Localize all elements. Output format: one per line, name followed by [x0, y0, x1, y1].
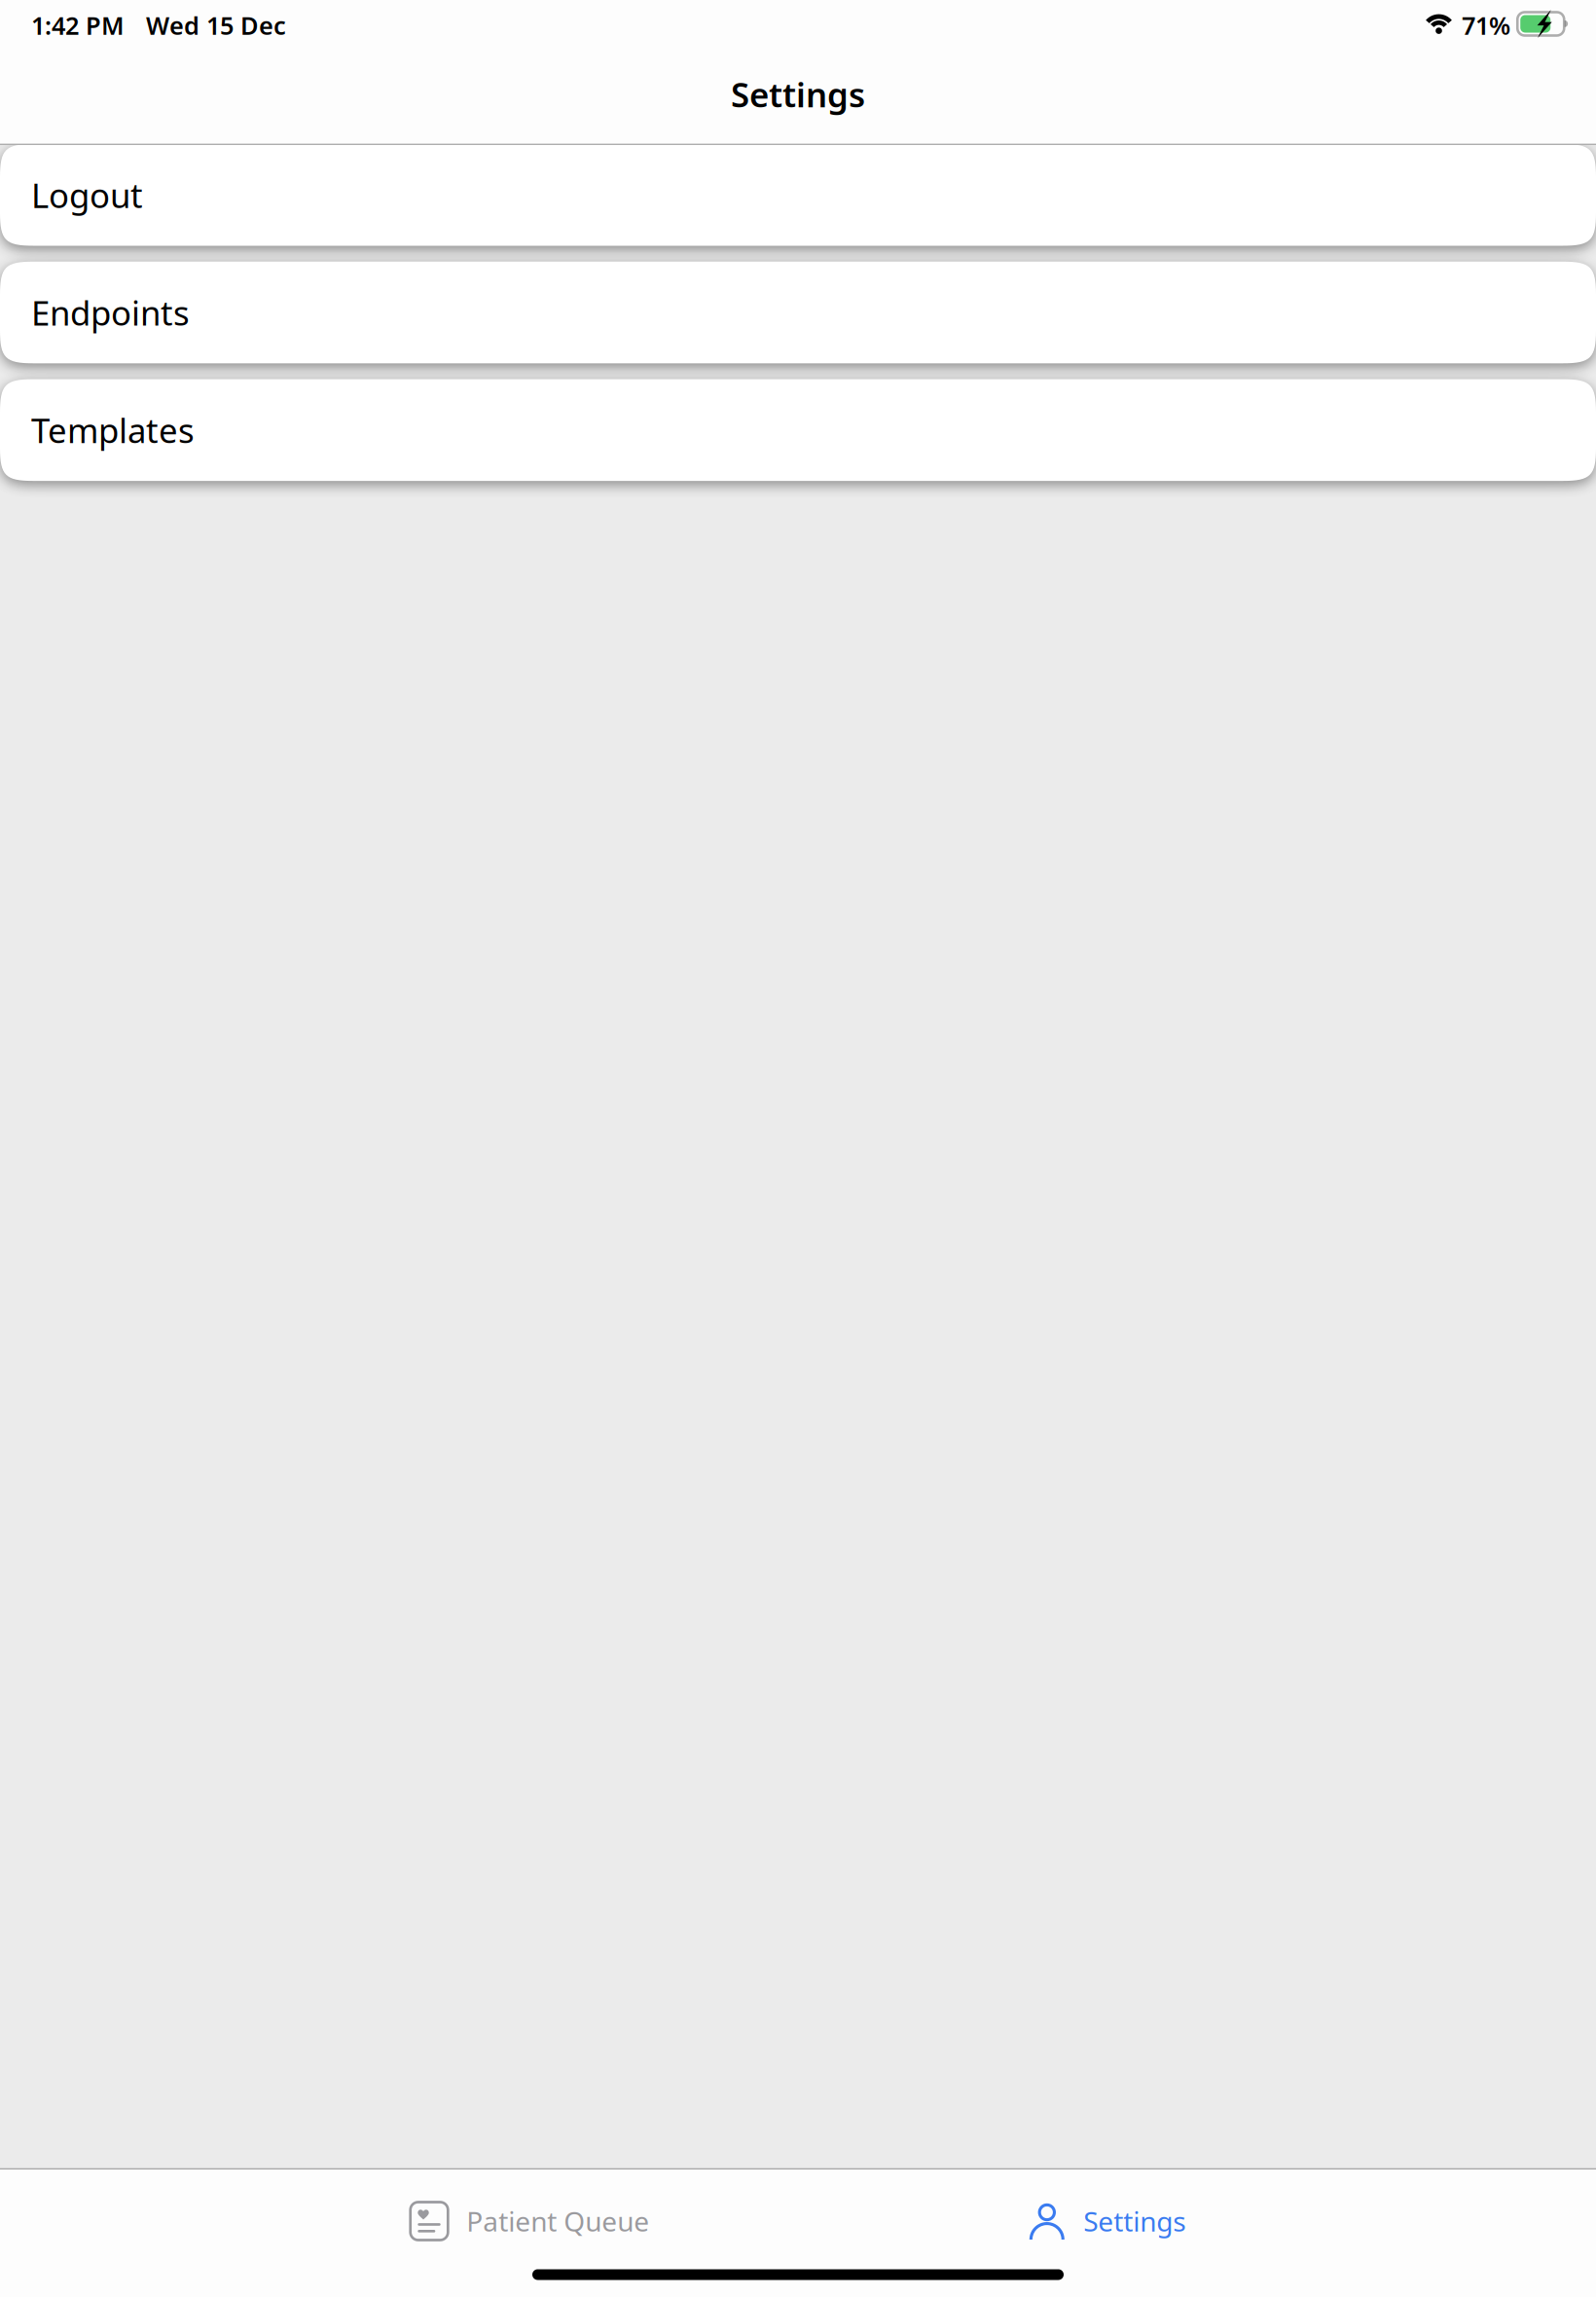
staticText: 71%	[1462, 9, 1510, 42]
staticText: Settings	[1083, 2203, 1186, 2239]
staticText: Logout	[31, 172, 143, 217]
button[interactable]: Patient Queue	[410, 2200, 649, 2242]
staticText: Settings	[731, 72, 865, 117]
button[interactable]: Endpoints	[0, 262, 1596, 363]
button[interactable]: Logout	[0, 144, 1596, 246]
staticText: 1:42 PM	[31, 9, 125, 42]
button[interactable]: Templates	[0, 379, 1596, 481]
button[interactable]: Settings	[1029, 2200, 1186, 2242]
staticText: Patient Queue	[466, 2203, 649, 2239]
staticText: Endpoints	[31, 290, 190, 335]
staticText: Wed 15 Dec	[146, 9, 286, 42]
staticText: Templates	[31, 408, 195, 452]
